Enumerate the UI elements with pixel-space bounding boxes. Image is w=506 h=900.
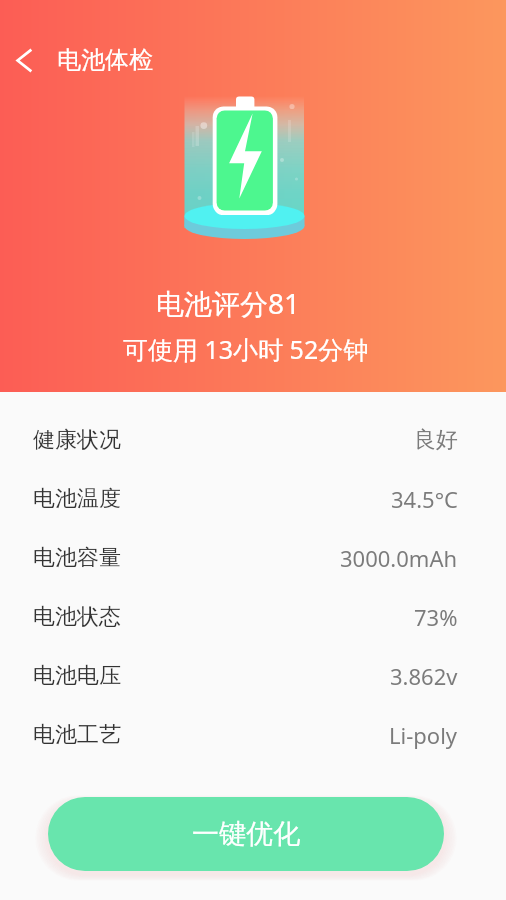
button[interactable]: 健康状况 [0,410,506,469]
button[interactable]: 一键优化 [48,797,444,871]
staticText: 73% [414,602,458,632]
button[interactable]: 电池电压 [0,646,506,705]
button[interactable]: 电池温度 [0,469,506,528]
staticText: 3.862v [390,661,458,691]
staticText: 一键优化 [192,817,300,851]
staticText: 电池评分81 [156,284,301,322]
staticText: 电池状态 [33,603,121,631]
staticText: 健康状况 [33,426,121,454]
staticText: 电池温度 [33,485,121,513]
staticText: 34.5°C [391,484,458,514]
staticText: 电池工艺 [33,721,121,749]
button[interactable]: 电池状态 [0,587,506,646]
staticText: 良好 [414,426,458,454]
staticText: 3000.0mAh [340,543,458,573]
staticText: Li-poly [389,720,458,750]
button[interactable]: 电池工艺 [0,705,506,764]
button[interactable]: 电池容量 [0,528,506,587]
button[interactable]: Back [0,36,48,84]
staticText: 电池电压 [33,662,121,690]
staticText: 可使用 13小时 52分钟 [123,332,369,366]
staticText: 电池体检 [57,45,153,75]
staticText: 电池容量 [33,544,121,572]
